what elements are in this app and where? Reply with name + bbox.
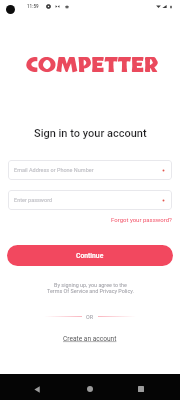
staticText: Enter password xyxy=(14,197,53,203)
button[interactable]: Recent apps xyxy=(131,379,151,399)
staticText: Sign in to your account xyxy=(34,127,147,140)
staticText: Continue xyxy=(76,252,104,260)
staticText: Forgot your password? xyxy=(111,216,172,223)
button[interactable]: Home xyxy=(80,379,100,399)
staticText: COMPETTER xyxy=(26,52,159,80)
staticText: By signing up, you agree to the Terms Of… xyxy=(47,282,134,294)
button[interactable]: Continue xyxy=(7,245,173,266)
staticText: OR xyxy=(86,314,94,320)
button[interactable]: Forgot your password? xyxy=(110,215,173,224)
staticText: Create an account xyxy=(63,335,117,343)
button[interactable]: Enter password xyxy=(8,190,172,210)
staticText: 11:59 xyxy=(27,4,39,9)
staticText: Email Address or Phone Number xyxy=(14,167,94,173)
button[interactable]: Back xyxy=(27,379,47,399)
button[interactable]: Create an account xyxy=(61,333,119,345)
button[interactable]: Email Address or Phone Number xyxy=(8,160,172,180)
